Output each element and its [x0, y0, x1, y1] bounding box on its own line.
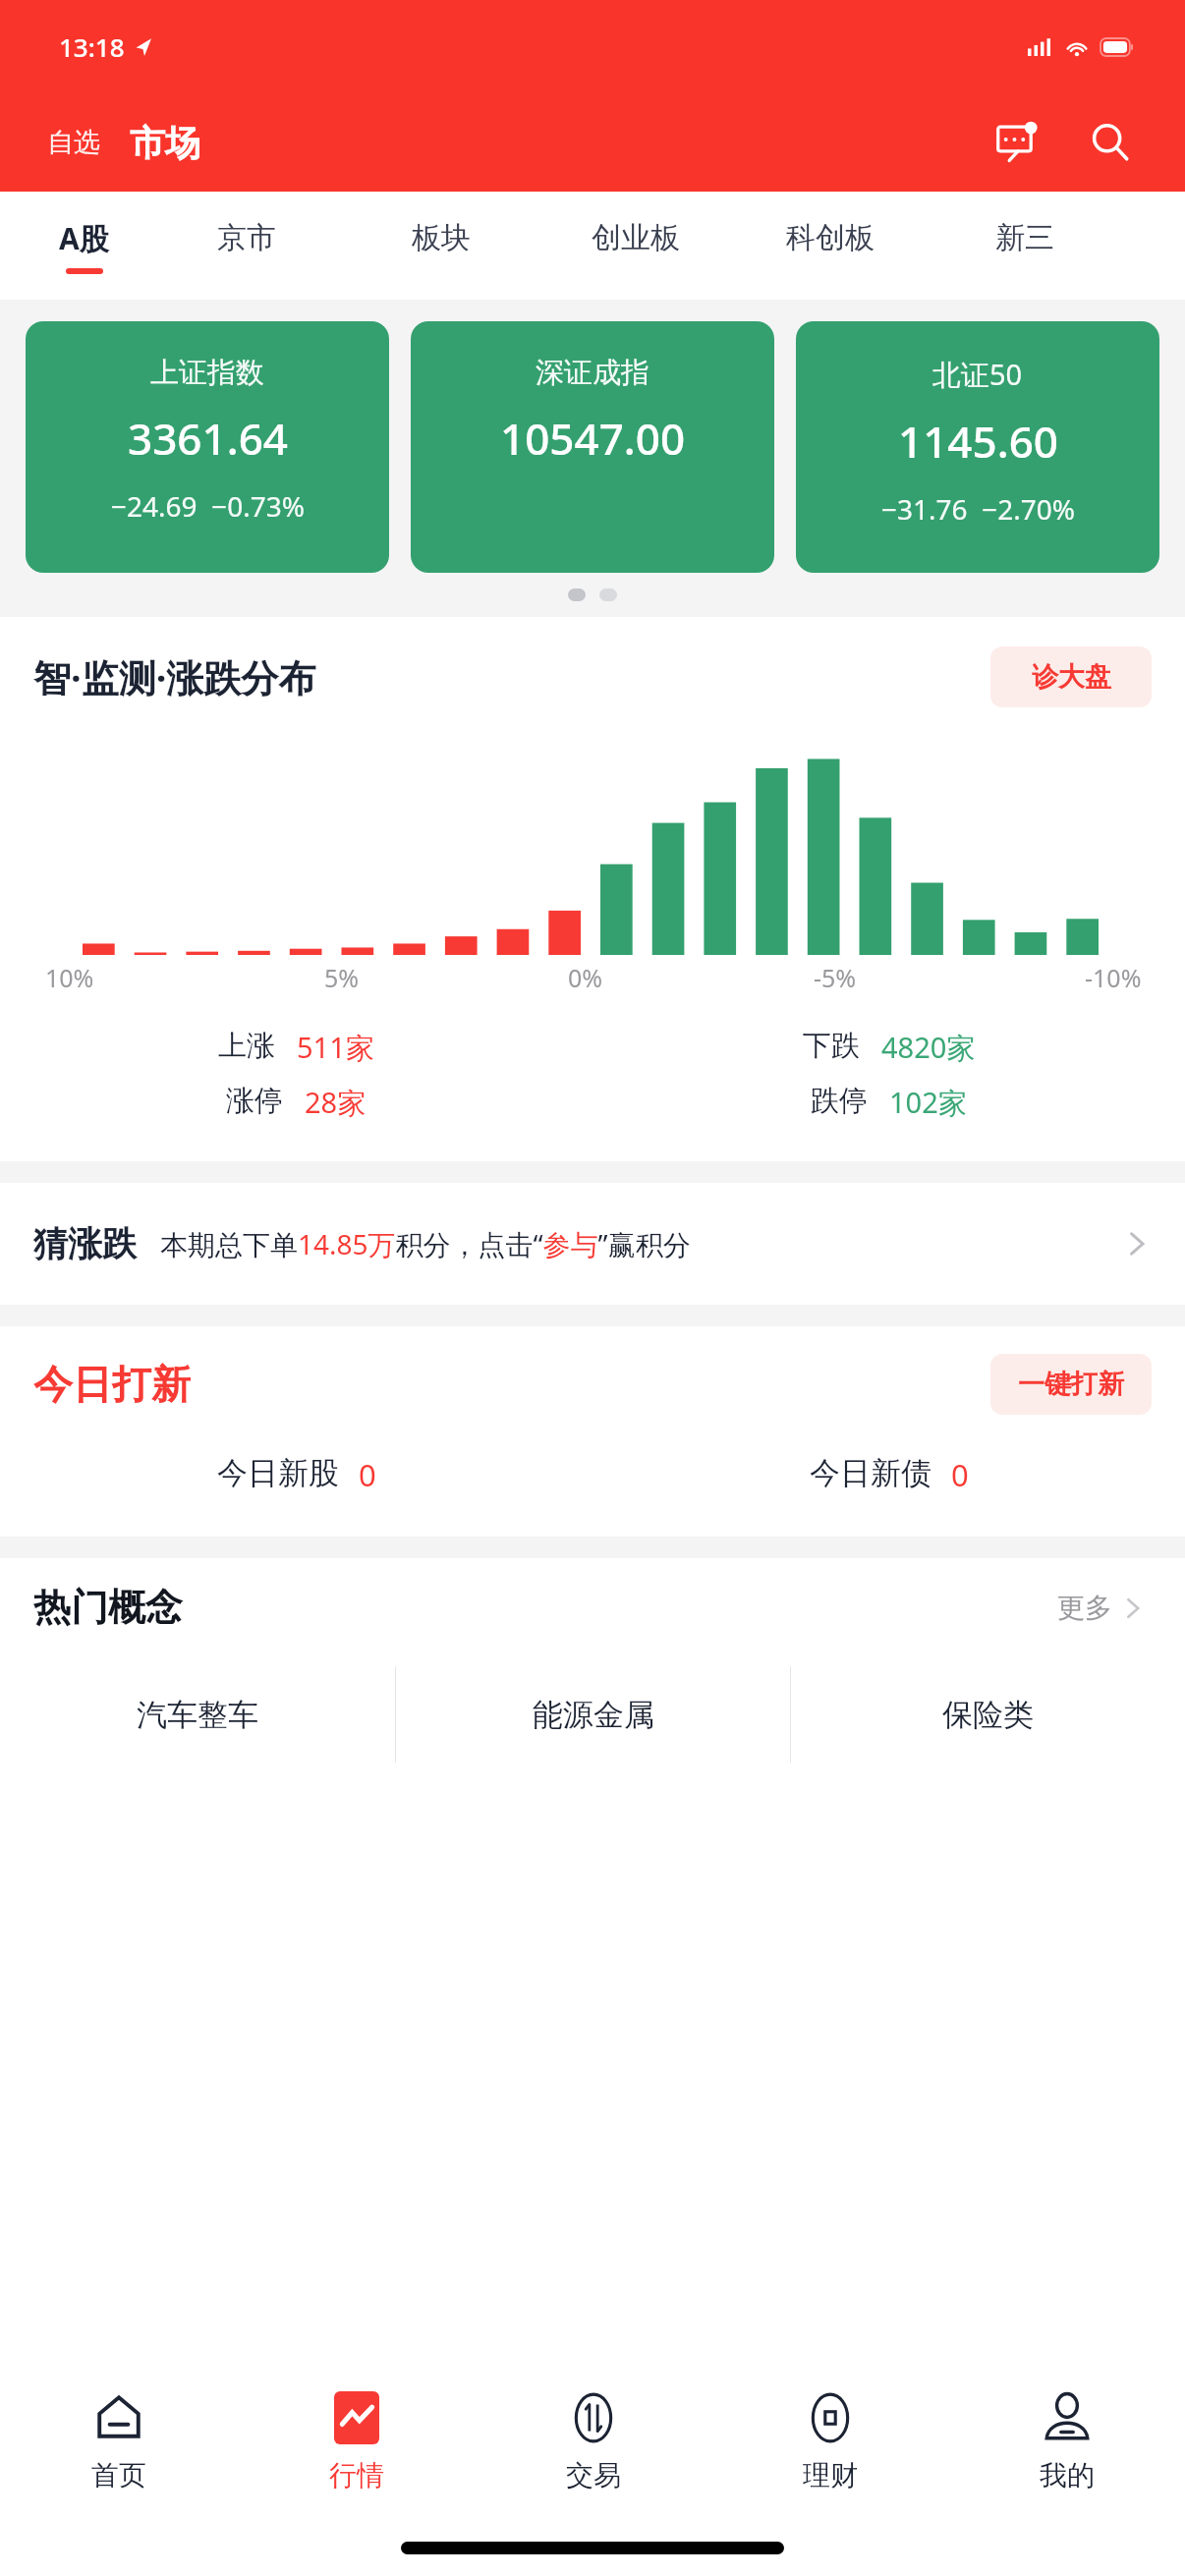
staticText: 3361.64 — [128, 409, 288, 468]
staticText: 下跌 — [803, 1028, 860, 1064]
staticText: −31.76 −2.70% — [881, 490, 1075, 528]
staticText: 交易 — [566, 2458, 621, 2492]
staticText: 5% — [324, 961, 360, 994]
staticText: 511家 — [297, 1028, 374, 1067]
staticText: 102家 — [889, 1083, 967, 1122]
staticText: -10% — [1085, 961, 1142, 994]
staticText: 汽车整车 — [137, 1696, 258, 1734]
staticText: 本期总下单14.85万积分，点击“参与”赢积分 — [160, 1225, 691, 1262]
button[interactable]: 深证成指 — [411, 321, 774, 573]
button[interactable]: 今日新债 — [592, 1454, 1185, 1495]
button[interactable]: 能源金属 — [396, 1660, 790, 1768]
staticText: 跌停 — [811, 1083, 868, 1119]
staticText: 智·监测·涨跌分布 — [33, 651, 316, 702]
staticText: 行情 — [329, 2458, 384, 2492]
staticText: 0 — [359, 1454, 376, 1495]
staticText: 上证指数 — [150, 355, 264, 391]
button[interactable]: A股 — [29, 192, 138, 300]
button[interactable]: 首页 — [0, 2362, 238, 2519]
staticText: 涨停 — [226, 1083, 283, 1119]
staticText: 猜涨跌 — [33, 1222, 137, 1265]
staticText: 13:18 — [59, 29, 125, 64]
button[interactable]: 我的 — [948, 2362, 1185, 2519]
staticText: 能源金属 — [533, 1696, 654, 1734]
button[interactable]: 保险类 — [791, 1660, 1185, 1768]
staticText: 保险类 — [942, 1696, 1034, 1734]
staticText: 一键打新 — [1018, 1368, 1124, 1401]
staticText: 28家 — [305, 1083, 367, 1122]
button[interactable]: 一键打新 — [990, 1354, 1152, 1415]
button[interactable]: 上证指数 — [26, 321, 389, 573]
button[interactable]: 猜涨跌 — [0, 1183, 1185, 1305]
button[interactable]: 京市 — [149, 192, 344, 300]
staticText: 深证成指 — [536, 355, 649, 391]
staticText: 诊大盘 — [1032, 660, 1111, 694]
staticText: -5% — [814, 961, 857, 994]
staticText: 0% — [568, 961, 603, 994]
staticText: 10% — [45, 961, 94, 994]
button[interactable]: 行情 — [238, 2362, 475, 2519]
button[interactable]: 新三 — [928, 192, 1122, 300]
button[interactable]: 汽车整车 — [0, 1660, 395, 1768]
button[interactable]: 板块 — [344, 192, 538, 300]
button[interactable]: 更多 — [1051, 1585, 1152, 1631]
staticText: 上涨 — [218, 1028, 275, 1064]
staticText: 创业板 — [592, 219, 680, 256]
staticText: 10547.00 — [500, 409, 686, 468]
button[interactable]: 交易 — [475, 2362, 711, 2519]
button[interactable]: 理财 — [711, 2362, 948, 2519]
staticText: 新三 — [995, 219, 1054, 256]
staticText: 4820家 — [881, 1028, 976, 1067]
staticText: 自选 — [47, 126, 100, 159]
button[interactable]: 创业板 — [538, 192, 733, 300]
staticText: 0 — [951, 1454, 969, 1495]
staticText: 今日新债 — [810, 1454, 931, 1492]
staticText: 更多 — [1057, 1591, 1112, 1625]
staticText: 京市 — [217, 219, 276, 256]
staticText: 首页 — [91, 2458, 146, 2492]
button[interactable]: 市场 — [126, 121, 204, 165]
button[interactable]: Messages — [983, 107, 1053, 178]
staticText: 热门概念 — [33, 1584, 183, 1631]
staticText: −24.69 −0.73% — [111, 487, 305, 525]
staticText: 理财 — [803, 2458, 858, 2492]
button[interactable]: Search — [1075, 107, 1146, 178]
staticText: 今日新股 — [217, 1454, 339, 1492]
staticText: 市场 — [130, 121, 200, 165]
staticText: 1145.60 — [898, 412, 1058, 471]
button[interactable]: 诊大盘 — [990, 646, 1152, 707]
staticText: 北证50 — [932, 355, 1023, 394]
staticText: 今日打新 — [33, 1360, 191, 1409]
button[interactable]: 北证50 — [796, 321, 1159, 573]
button[interactable]: 科创板 — [733, 192, 928, 300]
staticText: 科创板 — [786, 219, 875, 256]
staticText: 板块 — [412, 219, 471, 256]
staticText: 我的 — [1040, 2458, 1095, 2492]
button[interactable]: 自选 — [43, 120, 104, 165]
staticText: A股 — [59, 218, 109, 258]
button[interactable]: 今日新股 — [0, 1454, 592, 1495]
